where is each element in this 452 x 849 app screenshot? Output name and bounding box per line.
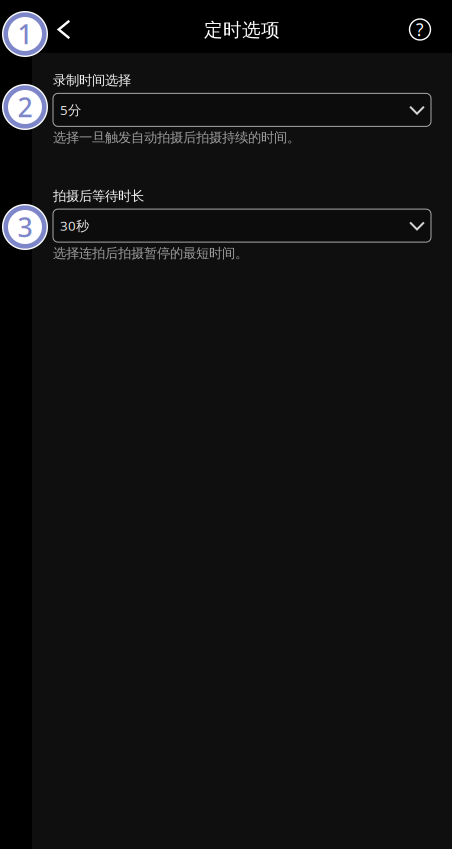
staticText: 定时选项 xyxy=(204,18,280,41)
button[interactable]: Help xyxy=(403,12,437,46)
staticText: 30秒 xyxy=(60,217,89,234)
staticText: 选择一旦触发自动拍摄后拍摄持续的时间。 xyxy=(53,129,300,146)
staticText: 1 xyxy=(17,16,32,52)
staticText: 拍摄后等待时长 xyxy=(53,188,144,204)
button[interactable]: Back xyxy=(47,12,81,46)
staticText: 3 xyxy=(17,209,32,245)
staticText: 选择连拍后拍摄暂停的最短时间。 xyxy=(53,245,248,261)
staticText: 5分 xyxy=(60,101,81,119)
staticText: 2 xyxy=(17,89,32,125)
staticText: 录制时间选择 xyxy=(53,72,131,88)
button[interactable]: 30秒 xyxy=(53,209,431,242)
staticText: ? xyxy=(416,18,424,41)
button[interactable]: 5分 xyxy=(53,93,431,126)
